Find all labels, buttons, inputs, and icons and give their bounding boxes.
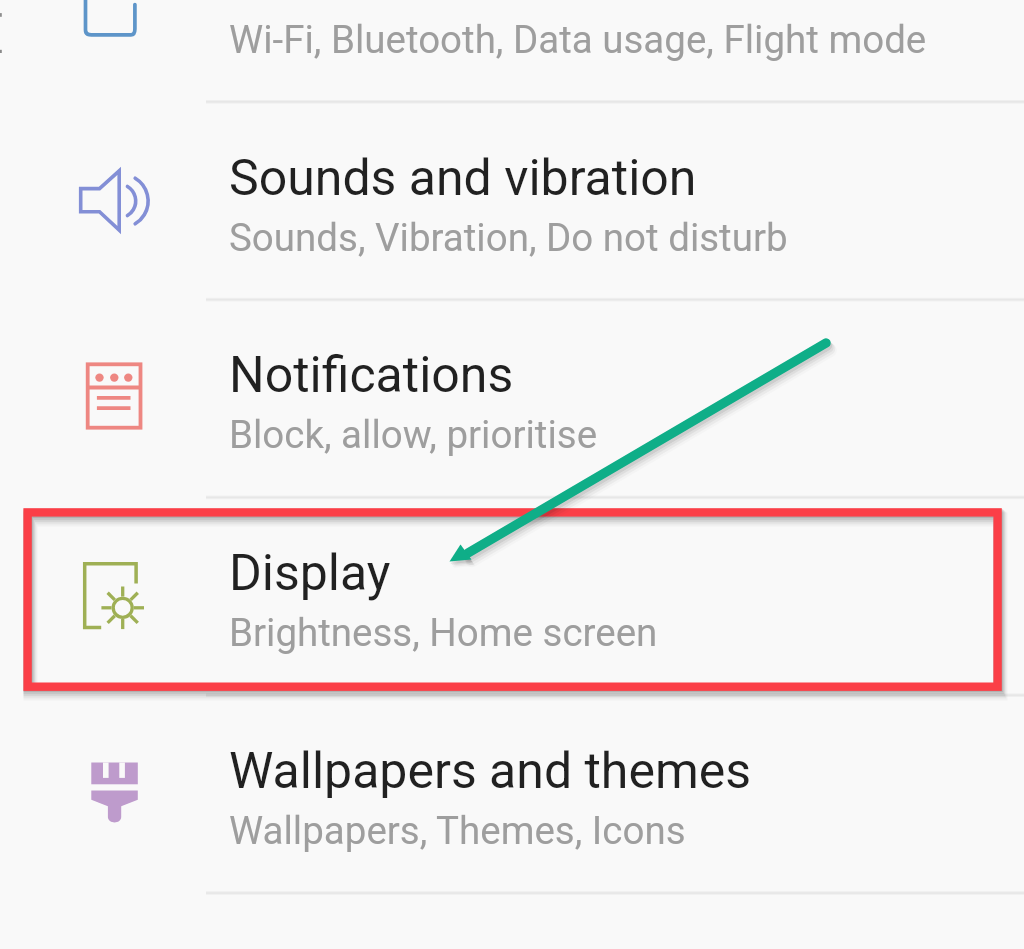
staticText: Wallpapers and themes	[229, 742, 752, 801]
staticText: Notifications	[229, 346, 514, 405]
button[interactable]: Display	[0, 497, 1024, 695]
other: Connections	[78, 0, 150, 39]
staticText: Sounds, Vibration, Do not disturb	[229, 215, 788, 260]
button[interactable]: Notifications	[0, 297, 1024, 495]
other: Notifications	[78, 360, 150, 432]
other: Display	[78, 560, 150, 632]
other: Wallpapers and themes	[78, 757, 150, 829]
staticText: Display	[229, 544, 391, 603]
staticText: Brightness, Home screen	[229, 610, 658, 655]
button[interactable]: Wallpapers and themes	[0, 694, 1024, 892]
staticText: Wi-Fi, Bluetooth, Data usage, Flight mod…	[229, 17, 927, 62]
other: Sounds and vibration	[78, 165, 150, 237]
staticText: Sounds and vibration	[229, 149, 697, 208]
staticText: Block, allow, prioritise	[229, 412, 598, 457]
button[interactable]: Sounds and vibration	[0, 102, 1024, 300]
button[interactable]: Connections	[0, 0, 1024, 102]
staticText: Wallpapers, Themes, Icons	[229, 808, 686, 853]
